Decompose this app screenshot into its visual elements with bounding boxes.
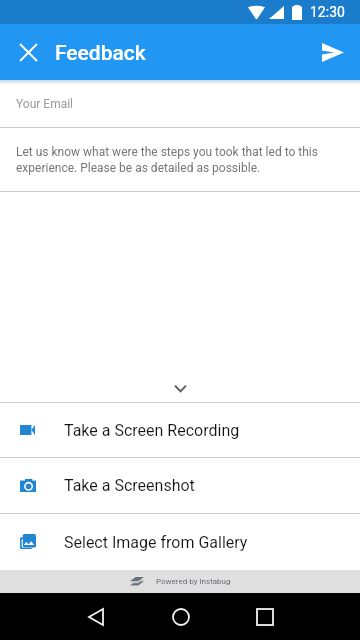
staticText: Feedback: [55, 41, 146, 66]
button[interactable]: Close: [0, 24, 56, 80]
staticText: Your Email: [16, 97, 74, 111]
button[interactable]: Back: [68, 593, 123, 640]
staticText: 12:30: [310, 4, 345, 20]
button[interactable]: Powered by Instabug: [0, 570, 360, 593]
staticText: Powered by Instabug: [156, 577, 231, 586]
staticText: Take a Screenshot: [64, 476, 195, 495]
button[interactable]: Home: [153, 593, 208, 640]
button[interactable]: Send: [304, 24, 360, 80]
staticText: Take a Screen Recording: [64, 421, 240, 440]
staticText: Select Image from Gallery: [64, 533, 248, 552]
button[interactable]: Let us know what were the steps you took…: [0, 128, 360, 191]
button[interactable]: Recents: [237, 593, 292, 640]
button[interactable]: Take a Screenshot: [0, 458, 360, 513]
button[interactable]: Expand: [0, 372, 360, 402]
staticText: Let us know what were the steps you took…: [16, 145, 326, 175]
button[interactable]: Your Email: [0, 80, 360, 127]
button[interactable]: Select Image from Gallery: [0, 514, 360, 570]
button[interactable]: Take a Screen Recording: [0, 403, 360, 457]
